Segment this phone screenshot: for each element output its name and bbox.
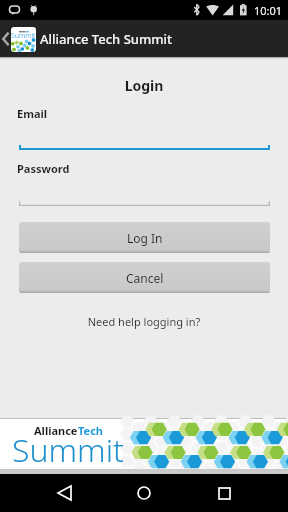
button[interactable]: Navigate up (0, 20, 12, 57)
staticText: Alliance Tech Summit (40, 30, 173, 48)
button[interactable]: Need help logging in? (0, 314, 288, 329)
button[interactable]: Password input (19, 186, 270, 208)
button[interactable]: Recent apps (209, 474, 239, 512)
staticText: Summit (11, 31, 36, 41)
staticText: Email (17, 106, 48, 121)
staticText: Log In (127, 230, 163, 246)
staticText: Alliance (34, 423, 78, 438)
staticText: Summit (12, 428, 124, 472)
button[interactable]: Cancel (19, 262, 270, 293)
button[interactable]: Log In (19, 222, 270, 253)
button[interactable]: Home (129, 474, 159, 512)
staticText: Cancel (126, 270, 164, 286)
staticText: Password (17, 161, 70, 176)
button[interactable]: Back (50, 474, 79, 512)
button[interactable]: Email input (19, 130, 270, 152)
button[interactable]: Alliance (0, 419, 288, 469)
staticText: Login (0, 76, 288, 95)
staticText: 10:01 (254, 3, 283, 18)
staticText: Tech (78, 423, 103, 438)
